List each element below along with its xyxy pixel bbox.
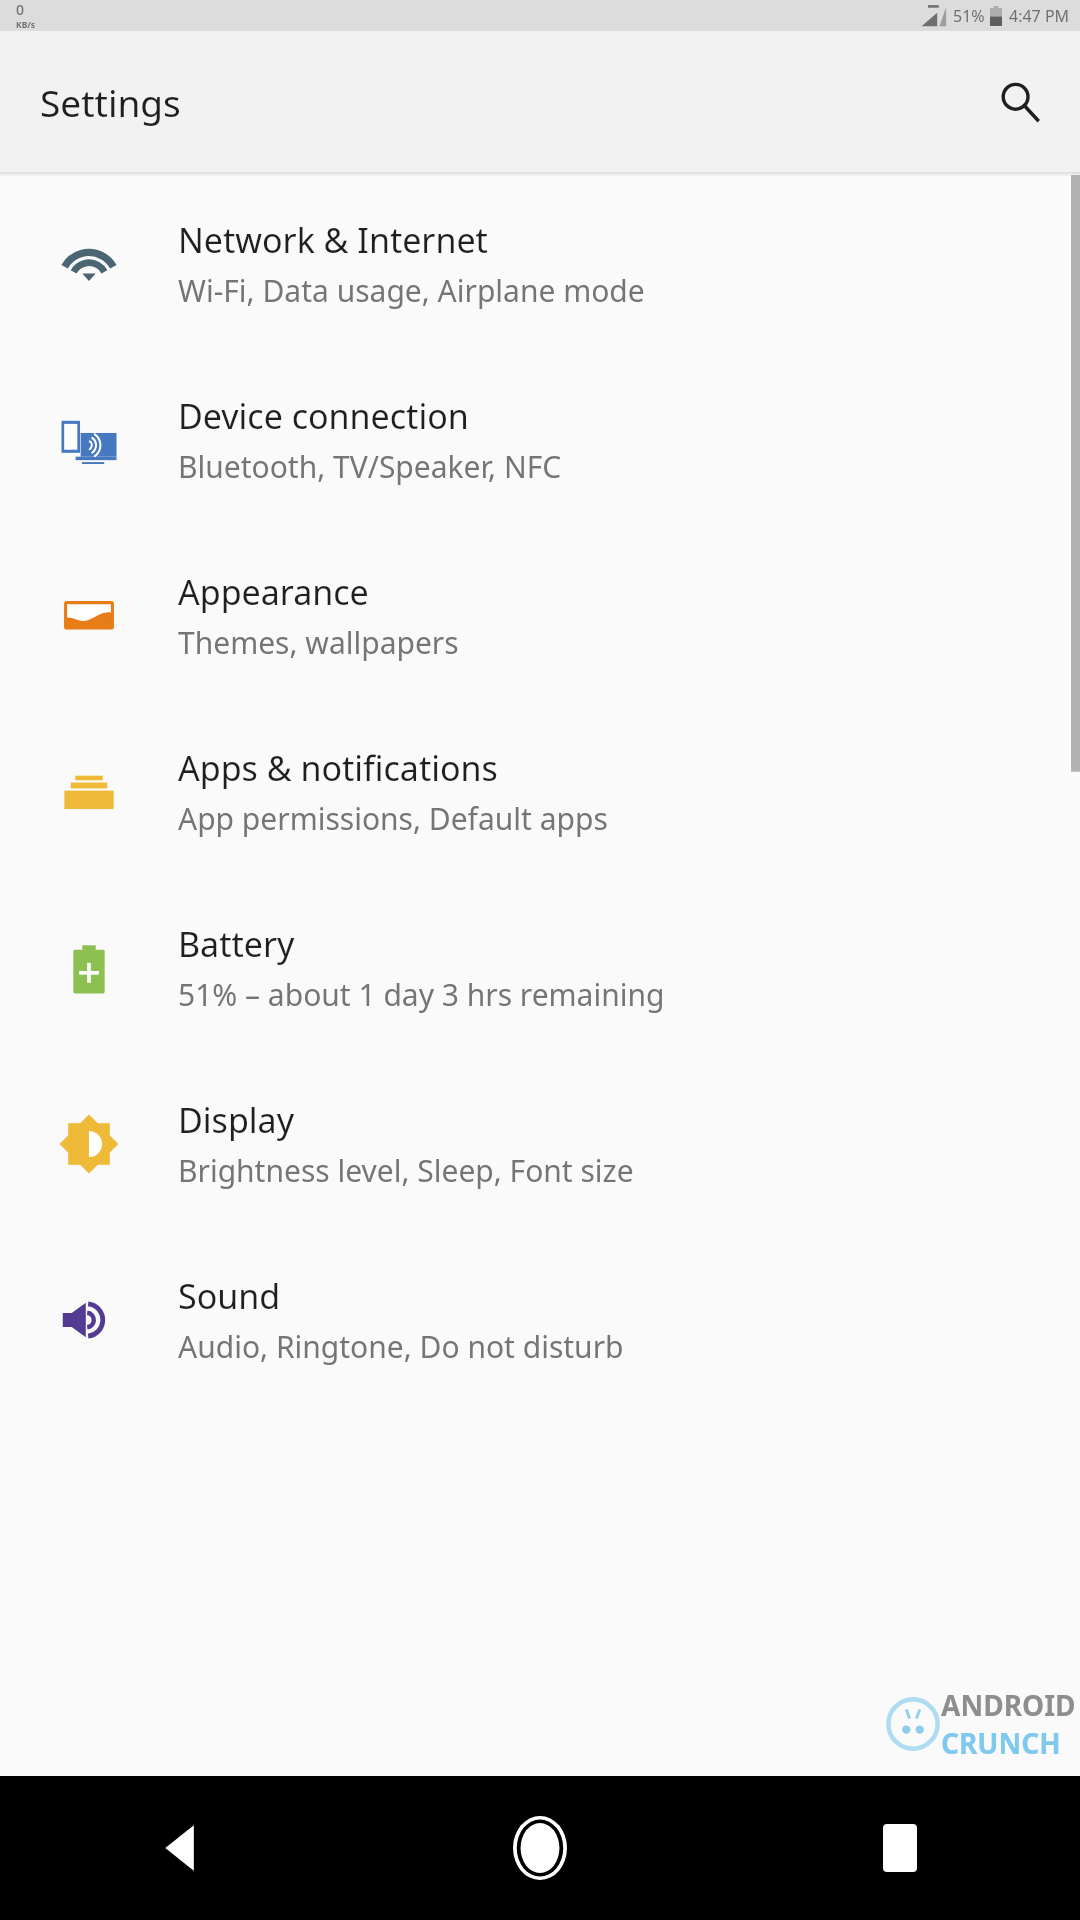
button[interactable]: Sound [0, 1232, 1080, 1408]
staticText: Themes, wallpapers [178, 622, 459, 663]
staticText: Brightness level, Sleep, Font size [178, 1150, 634, 1191]
staticText: Battery [178, 921, 295, 967]
staticText: KB/s [16, 19, 36, 31]
staticText: Apps & notifications [178, 745, 498, 791]
staticText: Settings [40, 77, 181, 127]
button[interactable]: Device connection [0, 352, 1080, 528]
staticText: 0 [16, 0, 25, 19]
staticText: 51% – about 1 day 3 hrs remaining [178, 974, 665, 1015]
button[interactable]: Apps & notifications [0, 704, 1080, 880]
staticText: Sound [178, 1273, 281, 1319]
button[interactable]: Home [360, 1776, 720, 1920]
staticText: Bluetooth, TV/Speaker, NFC [178, 446, 562, 487]
staticText: 4:47 PM [1009, 5, 1070, 27]
button[interactable]: Display [0, 1056, 1080, 1232]
button[interactable]: Battery [0, 880, 1080, 1056]
staticText: Display [178, 1097, 294, 1143]
staticText: Wi-Fi, Data usage, Airplane mode [178, 270, 645, 311]
staticText: Device connection [178, 393, 469, 439]
staticText: Appearance [178, 569, 369, 615]
staticText: App permissions, Default apps [178, 798, 608, 839]
button[interactable]: Search [982, 64, 1058, 140]
button[interactable]: Recents [720, 1776, 1080, 1920]
staticText: CRUNCH [941, 1724, 1061, 1762]
staticText: Audio, Ringtone, Do not disturb [178, 1326, 624, 1367]
button[interactable]: Network & Internet [0, 176, 1080, 352]
staticText: Network & Internet [178, 217, 488, 263]
staticText: ANDROID [941, 1686, 1076, 1724]
button[interactable]: Appearance [0, 528, 1080, 704]
staticText: 51% [953, 5, 985, 27]
button[interactable]: Back [0, 1776, 360, 1920]
